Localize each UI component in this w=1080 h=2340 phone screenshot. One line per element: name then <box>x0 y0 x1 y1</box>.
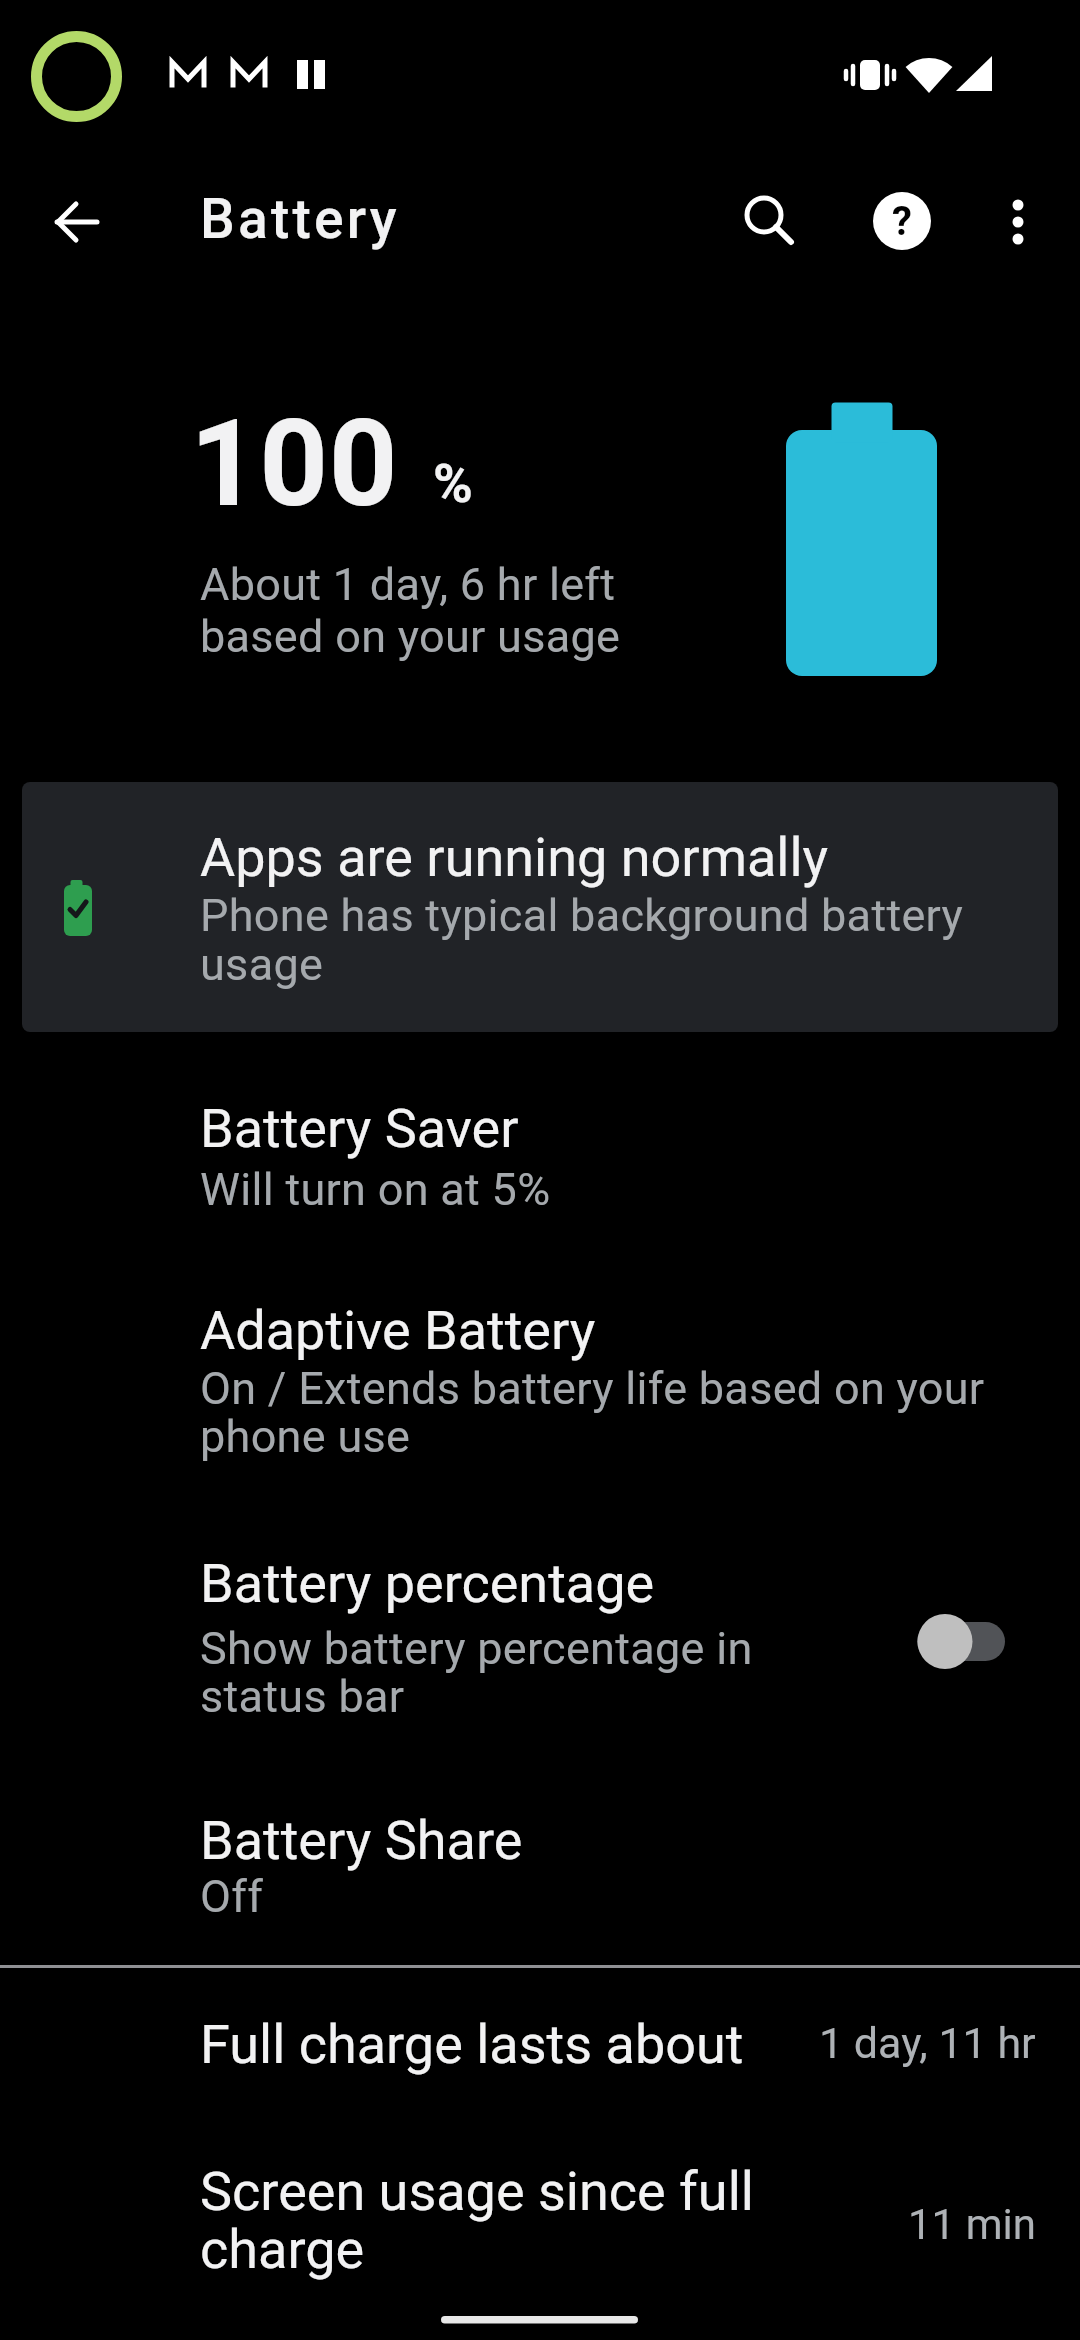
button[interactable] <box>728 180 800 255</box>
staticText: % <box>433 452 473 515</box>
staticText: Battery Saver <box>200 1097 519 1160</box>
button[interactable] <box>985 185 1051 260</box>
staticText: ? <box>892 198 912 245</box>
button[interactable] <box>0 1275 1080 1490</box>
staticText: Will turn on at 5% <box>200 1163 551 1216</box>
staticText: About 1 day, 6 hr left <box>200 558 616 611</box>
staticText: Screen usage since full <box>200 2160 754 2223</box>
button[interactable] <box>40 185 115 260</box>
staticText: Battery Share <box>200 1809 523 1872</box>
staticText: Phone has typical background battery <box>200 889 964 942</box>
button[interactable]: ? <box>873 192 931 250</box>
staticText: 100 <box>190 394 399 535</box>
staticText: based on your usage <box>200 610 621 663</box>
staticText: On / Extends battery life based on your <box>200 1362 985 1415</box>
staticText: Apps are running normally <box>200 826 829 889</box>
button[interactable] <box>0 2140 1080 2305</box>
staticText: charge <box>200 2218 365 2281</box>
staticText: Show battery percentage in <box>200 1622 753 1675</box>
staticText: 11 min <box>908 2200 1036 2249</box>
staticText: Full charge lasts about <box>200 2013 744 2076</box>
staticText: phone use <box>200 1410 411 1463</box>
staticText: Battery <box>200 187 400 251</box>
staticText: usage <box>200 938 324 991</box>
staticText: Adaptive Battery <box>200 1299 596 1362</box>
staticText: 1 day, 11 hr <box>819 2018 1036 2068</box>
button[interactable] <box>0 1530 1080 1745</box>
button[interactable] <box>0 1075 1080 1235</box>
staticText: status bar <box>200 1670 405 1723</box>
staticText: Battery percentage <box>200 1552 655 1615</box>
button[interactable] <box>0 1790 1080 1940</box>
staticText: Off <box>200 1870 264 1923</box>
button[interactable] <box>22 782 1058 1032</box>
button[interactable] <box>0 1990 1080 2100</box>
